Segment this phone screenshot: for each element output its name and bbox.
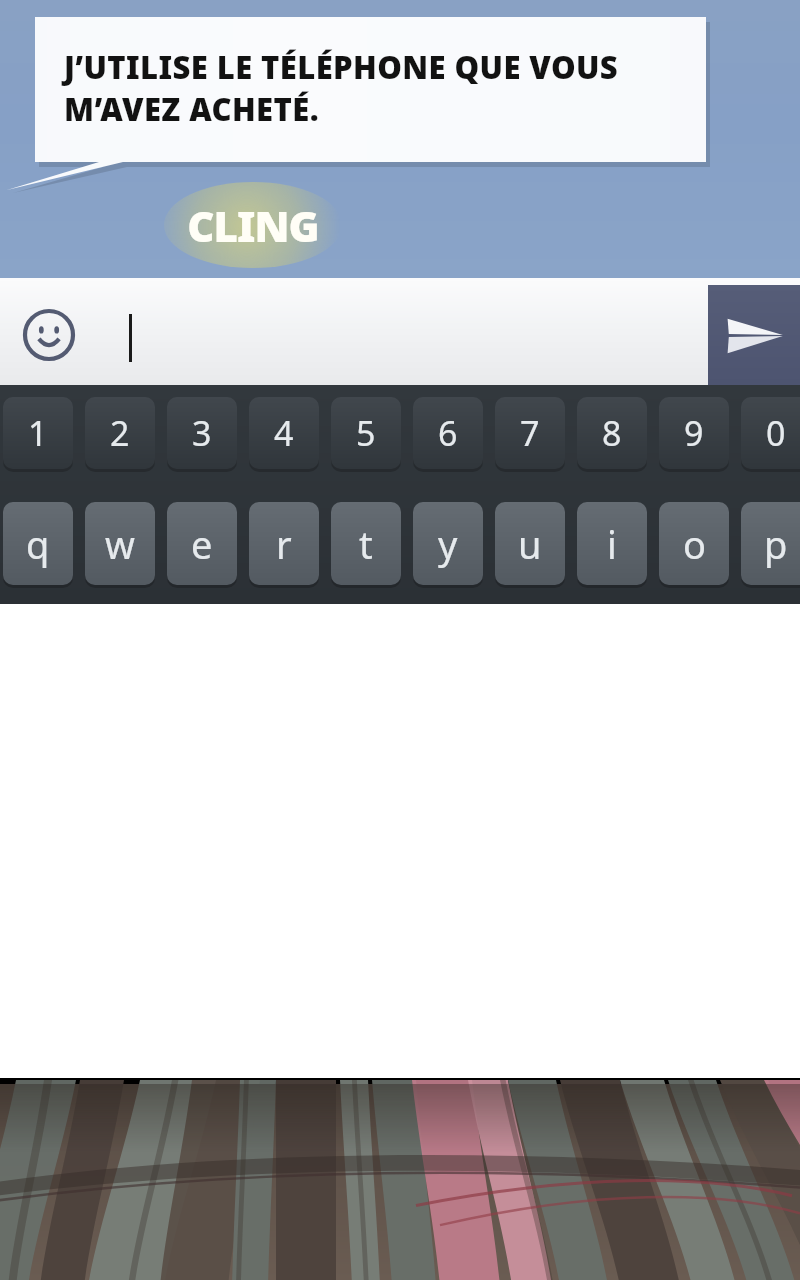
button[interactable]: 1 xyxy=(3,397,73,469)
button[interactable]: t xyxy=(331,502,401,585)
button[interactable]: 2 xyxy=(85,397,155,469)
button[interactable]: u xyxy=(495,502,565,585)
button[interactable]: p xyxy=(741,502,800,585)
button[interactable]: o xyxy=(659,502,729,585)
button[interactable]: 7 xyxy=(495,397,565,469)
staticText: r xyxy=(276,518,292,570)
staticText: u xyxy=(518,518,542,570)
button[interactable]: 6 xyxy=(413,397,483,469)
staticText: 2 xyxy=(110,410,130,456)
staticText: q xyxy=(26,518,50,570)
staticText: o xyxy=(683,518,706,570)
staticText: i xyxy=(607,518,617,570)
staticText: p xyxy=(764,518,788,570)
button[interactable]: 0 xyxy=(741,397,800,469)
staticText: 1 xyxy=(28,410,48,456)
button[interactable] xyxy=(0,278,800,385)
button[interactable]: 3 xyxy=(167,397,237,469)
button[interactable]: q xyxy=(3,502,73,585)
button[interactable]: Emoji xyxy=(18,304,80,366)
button[interactable]: 5 xyxy=(331,397,401,469)
button[interactable]: 9 xyxy=(659,397,729,469)
button[interactable]: Send xyxy=(708,285,800,385)
staticText: 6 xyxy=(438,410,458,456)
staticText: 4 xyxy=(274,410,294,456)
button[interactable]: r xyxy=(249,502,319,585)
staticText: y xyxy=(438,518,458,570)
button[interactable]: 4 xyxy=(249,397,319,469)
staticText: 9 xyxy=(684,410,704,456)
staticText: t xyxy=(359,518,373,570)
button[interactable]: w xyxy=(85,502,155,585)
staticText: e xyxy=(191,518,213,570)
staticText: 3 xyxy=(192,410,212,456)
button[interactable]: 8 xyxy=(577,397,647,469)
staticText: CLING xyxy=(187,197,319,254)
staticText: 0 xyxy=(766,410,786,456)
staticText: w xyxy=(105,518,135,570)
staticText: 5 xyxy=(356,410,376,456)
staticText: 8 xyxy=(602,410,622,456)
button[interactable]: y xyxy=(413,502,483,585)
button[interactable]: i xyxy=(577,502,647,585)
staticText: 7 xyxy=(520,410,540,456)
staticText: J’UTILISE LE TÉLÉPHONE QUE VOUS M’AVEZ A… xyxy=(64,46,664,130)
button[interactable]: e xyxy=(167,502,237,585)
